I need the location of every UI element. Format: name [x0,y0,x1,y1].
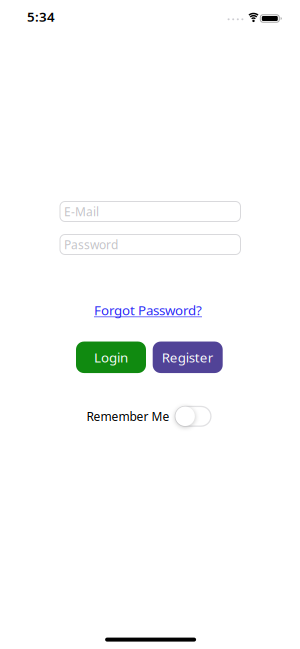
staticText: Password [59,236,113,252]
button[interactable]: Login [76,342,146,373]
textField[interactable]: Password [59,236,241,252]
staticText: Login [94,348,128,366]
textField[interactable]: E-Mail [59,203,241,219]
staticText: Password [64,236,118,252]
button[interactable]: Remember Me [87,406,212,427]
button[interactable]: Register [153,342,223,373]
staticText: 5:34 [27,8,55,25]
staticText: Forgot Password? [94,301,202,319]
staticText: E-Mail [64,203,99,219]
staticText: Remember Me [87,408,170,424]
staticText: E-Mail [59,203,94,219]
button[interactable]: Forgot Password? [94,301,202,319]
staticText: Register [162,348,214,366]
